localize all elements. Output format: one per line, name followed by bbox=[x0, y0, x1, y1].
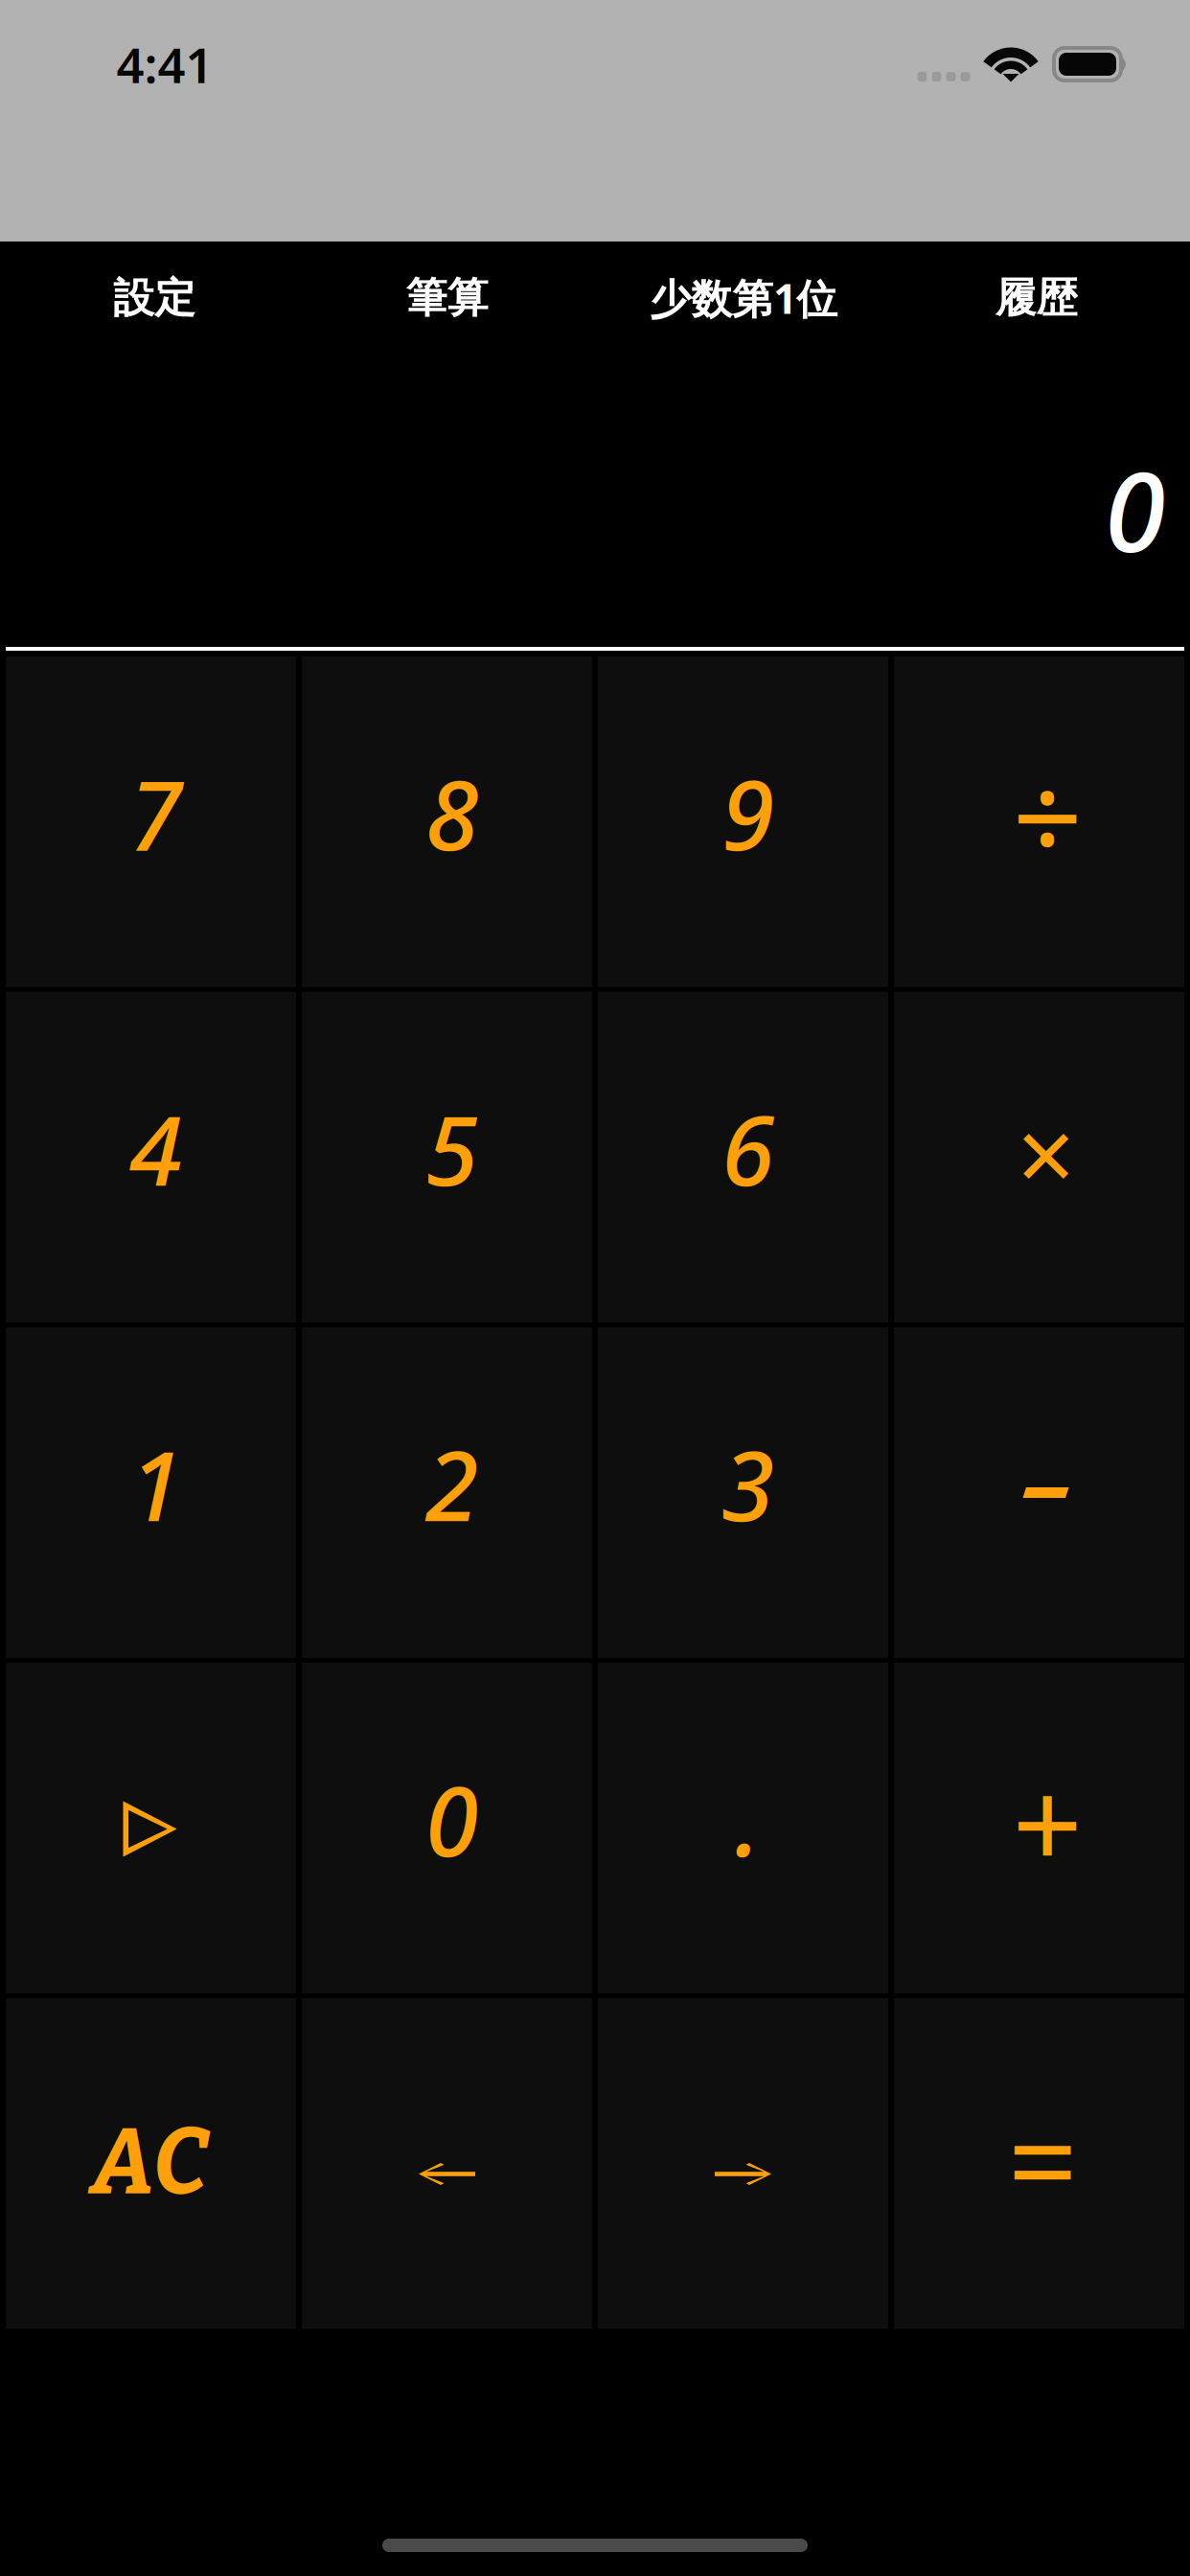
staticText: ÷ bbox=[1010, 734, 1080, 897]
button[interactable]: 履歴 bbox=[892, 246, 1190, 350]
button[interactable]: 9 bbox=[598, 656, 888, 987]
button[interactable]: Divide bbox=[894, 656, 1184, 987]
staticText: AC bbox=[91, 2107, 209, 2218]
button[interactable]: Step bbox=[6, 1663, 296, 1993]
staticText: 4:41 bbox=[116, 32, 213, 97]
button[interactable]: 5 bbox=[302, 992, 592, 1322]
staticText: 2 bbox=[425, 1420, 478, 1548]
button[interactable]: 0 bbox=[302, 1663, 592, 1993]
staticText: 履歴 bbox=[995, 273, 1078, 323]
button[interactable]: 2 bbox=[302, 1327, 592, 1658]
staticText: 0 bbox=[425, 1756, 478, 1883]
staticText: 8 bbox=[425, 750, 478, 877]
button[interactable]: 設定 bbox=[0, 246, 297, 350]
staticText: 0 bbox=[1105, 436, 1165, 582]
button[interactable]: 8 bbox=[302, 656, 592, 987]
staticText: + bbox=[1010, 1740, 1080, 1903]
button[interactable]: Move left bbox=[302, 1998, 592, 2329]
staticText: 3 bbox=[721, 1420, 774, 1548]
button[interactable]: 4 bbox=[6, 992, 296, 1322]
staticText: 1 bbox=[129, 1420, 182, 1548]
button[interactable]: Move right bbox=[598, 1998, 888, 2329]
button[interactable]: 3 bbox=[598, 1327, 888, 1658]
button[interactable]: 7 bbox=[6, 656, 296, 987]
button[interactable]: Multiply bbox=[894, 992, 1184, 1322]
staticText: 筆算 bbox=[406, 273, 488, 323]
button[interactable]: 6 bbox=[598, 992, 888, 1322]
button[interactable]: 筆算 bbox=[297, 246, 595, 350]
staticText: . bbox=[735, 1756, 761, 1883]
button[interactable]: All clear bbox=[6, 1998, 296, 2329]
button[interactable]: Equals bbox=[894, 1998, 1184, 2329]
button[interactable]: 少数第1位 bbox=[595, 246, 892, 350]
button[interactable]: Add bbox=[894, 1663, 1184, 1993]
staticText: × bbox=[1015, 1085, 1073, 1220]
staticText: 6 bbox=[721, 1085, 774, 1212]
staticText: 9 bbox=[721, 750, 774, 877]
button[interactable]: 1 bbox=[6, 1327, 296, 1658]
staticText: 少数第1位 bbox=[650, 271, 838, 325]
staticText: 4 bbox=[129, 1085, 182, 1212]
staticText: 設定 bbox=[113, 273, 196, 323]
staticText: = bbox=[1005, 2077, 1075, 2240]
button[interactable]: Subtract bbox=[894, 1327, 1184, 1658]
staticText: 7 bbox=[129, 750, 182, 877]
button[interactable]: . bbox=[598, 1663, 888, 1993]
staticText: 5 bbox=[425, 1085, 478, 1212]
